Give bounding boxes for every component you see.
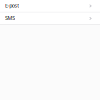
staticText: SMS bbox=[5, 14, 15, 22]
button[interactable]: E-post bbox=[0, 0, 100, 12]
staticText: E-post bbox=[5, 2, 19, 9]
button[interactable]: SMS bbox=[0, 12, 100, 24]
